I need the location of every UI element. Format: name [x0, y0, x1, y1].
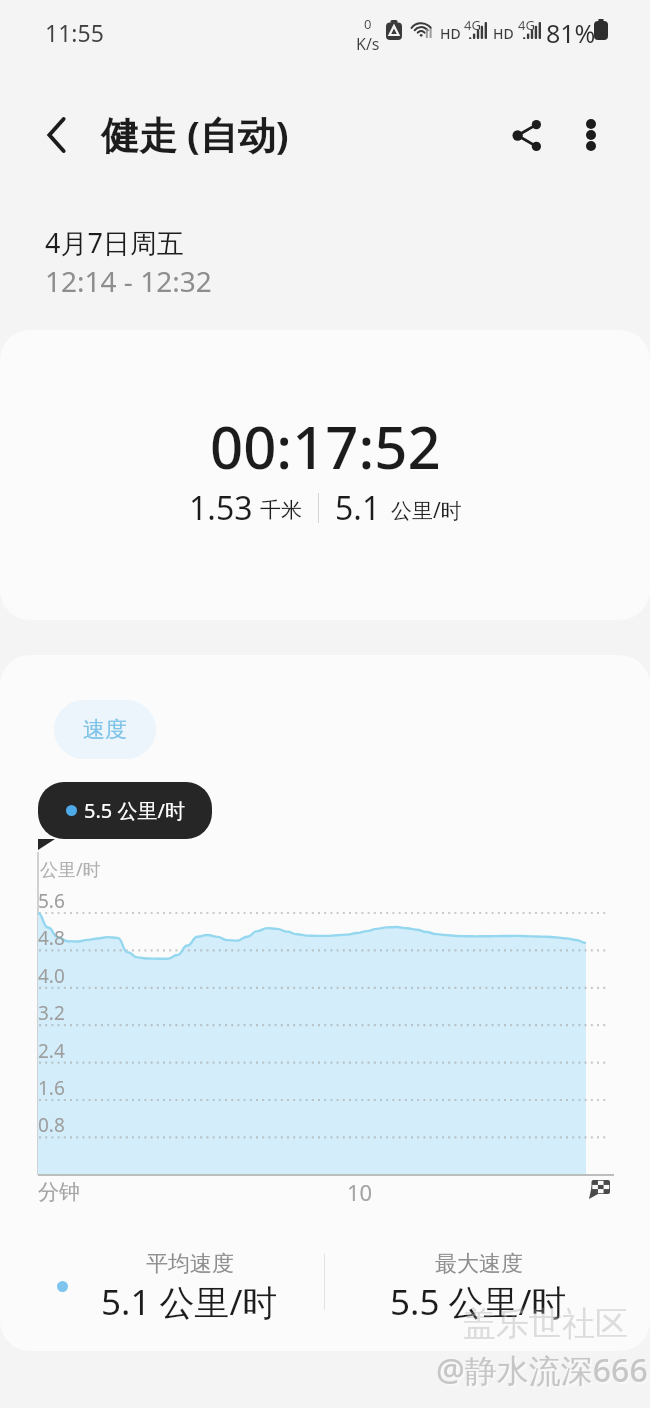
staticText: 5.1: [335, 486, 381, 530]
staticText: 81%: [546, 16, 596, 50]
staticText: 12:14 - 12:32: [45, 262, 212, 300]
staticText: 4.0: [38, 963, 65, 989]
staticText: 5.6: [38, 888, 65, 914]
staticText: @静水流深666: [438, 1350, 650, 1394]
staticText: 1.53: [189, 486, 253, 530]
staticText: 最大速度: [435, 1250, 523, 1278]
staticText: 10: [347, 1177, 373, 1207]
staticText: 5.5 公里/时: [390, 1278, 567, 1326]
staticText: 4.8: [38, 925, 65, 951]
button[interactable]: Back: [20, 99, 92, 171]
staticText: 4G: [464, 16, 481, 34]
staticText: 公里/时: [391, 496, 462, 525]
staticText: 4月7日周五: [45, 224, 184, 261]
staticText: 0.8: [38, 1112, 65, 1138]
staticText: 公里/时: [40, 857, 101, 882]
staticText: 5.1 公里/时: [101, 1278, 278, 1326]
button[interactable]: 速度: [54, 700, 156, 759]
button[interactable]: More options: [555, 99, 627, 171]
staticText: 00:17:52: [210, 407, 441, 486]
staticText: 0: [364, 15, 372, 33]
staticText: 千米: [260, 497, 302, 523]
staticText: 盖乐世社区: [465, 1305, 630, 1347]
staticText: HD: [440, 24, 461, 43]
staticText: 1.6: [38, 1075, 65, 1101]
staticText: @静水流深666: [436, 1348, 648, 1392]
staticText: 速度: [83, 716, 127, 744]
staticText: 分钟: [38, 1179, 80, 1205]
staticText: 平均速度: [146, 1250, 234, 1278]
staticText: 盖乐世社区: [463, 1303, 628, 1345]
staticText: 4G: [518, 16, 535, 34]
staticText: HD: [493, 24, 514, 43]
button[interactable]: Share: [491, 99, 563, 171]
staticText: 2.4: [38, 1038, 65, 1064]
staticText: 11:55: [45, 17, 104, 48]
staticText: K/s: [356, 33, 380, 55]
staticText: 3.2: [38, 1000, 65, 1026]
staticText: 5.5 公里/时: [84, 797, 185, 824]
staticText: 健走 (自动): [101, 108, 289, 160]
